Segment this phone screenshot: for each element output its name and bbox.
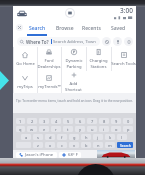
button[interactable]: i <box>99 126 109 132</box>
staticText: myTrends™ <box>38 84 61 90</box>
staticText: 68° F <box>68 152 78 158</box>
button[interactable]: Delete <box>124 37 133 46</box>
button[interactable]: k <box>105 134 115 140</box>
button[interactable]: Saved <box>105 20 132 36</box>
staticText: Where To? <box>26 39 49 45</box>
button[interactable]: 2 <box>27 118 37 124</box>
staticText: z <box>37 143 39 148</box>
button[interactable]: v <box>69 142 79 148</box>
staticText: f <box>61 135 63 140</box>
button[interactable]: Recents <box>78 20 105 36</box>
button[interactable]: s <box>33 134 43 140</box>
staticText: myTrips <box>17 84 33 90</box>
staticText: q <box>19 127 22 132</box>
button[interactable]: r <box>51 126 61 132</box>
button[interactable]: Ford Dealerships <box>37 47 61 71</box>
button[interactable]: myTrends™ <box>37 71 61 93</box>
button[interactable]: u <box>87 126 97 132</box>
button[interactable]: y <box>75 126 85 132</box>
button[interactable]: d <box>45 134 55 140</box>
button[interactable]: 5 <box>63 118 73 124</box>
staticText: w <box>30 127 34 132</box>
staticText: 8 <box>103 119 106 124</box>
button[interactable]: 6 <box>75 118 85 124</box>
button[interactable]: Jason's iPhone <box>16 152 57 158</box>
staticText: s <box>37 135 39 140</box>
button[interactable]: Browse <box>51 20 78 36</box>
staticText: 0 <box>127 119 130 124</box>
staticText: x <box>49 143 52 148</box>
button[interactable]: 9 <box>111 118 121 124</box>
button[interactable]: 1 <box>16 118 25 124</box>
staticText: m <box>108 143 112 148</box>
button[interactable]: g <box>69 134 79 140</box>
button[interactable]: Clear <box>102 37 111 46</box>
staticText: 3:00 <box>120 6 133 15</box>
button[interactable]: 0 <box>123 118 133 124</box>
button[interactable]: 68° F <box>59 152 81 158</box>
staticText: 5 <box>67 119 70 124</box>
staticText: 2 <box>31 119 34 124</box>
button[interactable]: x <box>45 142 55 148</box>
button[interactable]: Search <box>117 142 133 148</box>
staticText: 6 <box>79 119 82 124</box>
button[interactable]: Search Tools <box>111 47 136 71</box>
staticText: l <box>121 135 123 140</box>
button[interactable]: z <box>33 142 43 148</box>
button[interactable]: o <box>111 126 121 132</box>
button[interactable]: b <box>81 142 91 148</box>
staticText: Saved <box>111 25 126 32</box>
button[interactable]: l <box>117 134 127 140</box>
button[interactable]: c <box>57 142 67 148</box>
button[interactable]: 7 <box>87 118 97 124</box>
button[interactable]: m <box>105 142 115 148</box>
staticText: d <box>49 135 52 140</box>
button[interactable]: Vehicle <box>17 10 27 17</box>
button[interactable]: Search <box>23 20 51 36</box>
staticText: Charging Stations <box>89 58 108 69</box>
staticText: Ford Dealerships <box>37 58 61 69</box>
staticText: i <box>103 127 105 132</box>
staticText: Dynamic Parking <box>65 58 83 69</box>
button[interactable]: a <box>21 134 31 140</box>
button[interactable]: Go Home <box>13 47 37 71</box>
button[interactable]: q <box>16 126 25 132</box>
staticText: n <box>97 143 100 148</box>
staticText: Search Tools <box>111 61 136 67</box>
button[interactable]: f <box>57 134 67 140</box>
staticText: 3 <box>43 119 46 124</box>
button[interactable]: Charging Stations <box>86 47 111 71</box>
staticText: 9 <box>115 119 118 124</box>
staticText: y <box>79 127 82 132</box>
staticText: 7 <box>91 119 94 124</box>
staticText: t <box>67 127 69 132</box>
staticText: g <box>73 135 76 140</box>
staticText: b <box>85 143 88 148</box>
button[interactable]: e <box>39 126 49 132</box>
staticText: Search <box>29 25 46 32</box>
staticText: j <box>97 135 99 140</box>
button[interactable]: 8 <box>99 118 109 124</box>
staticText: Recents <box>82 25 101 32</box>
button[interactable]: Dynamic Parking <box>61 47 86 71</box>
button[interactable]: w <box>27 126 37 132</box>
button[interactable]: n <box>93 142 103 148</box>
button[interactable]: Add Shortcut <box>61 71 86 93</box>
staticText: v <box>73 143 76 148</box>
button[interactable]: Home <box>65 8 75 18</box>
button[interactable]: p <box>123 126 133 132</box>
button[interactable]: 3 <box>39 118 49 124</box>
staticText: k <box>109 135 112 140</box>
button[interactable]: 4 <box>51 118 61 124</box>
button[interactable]: t <box>63 126 73 132</box>
staticText: Jason's iPhone <box>25 152 54 158</box>
button[interactable]: Close <box>16 24 23 31</box>
button[interactable]: Voice search <box>113 37 122 46</box>
staticText: c <box>61 143 63 148</box>
button[interactable]: myTrips <box>13 71 37 93</box>
button[interactable]: j <box>93 134 103 140</box>
button[interactable]: Where To? <box>17 37 100 46</box>
button[interactable]: h <box>81 134 91 140</box>
staticText: Add Shortcut <box>61 81 86 92</box>
